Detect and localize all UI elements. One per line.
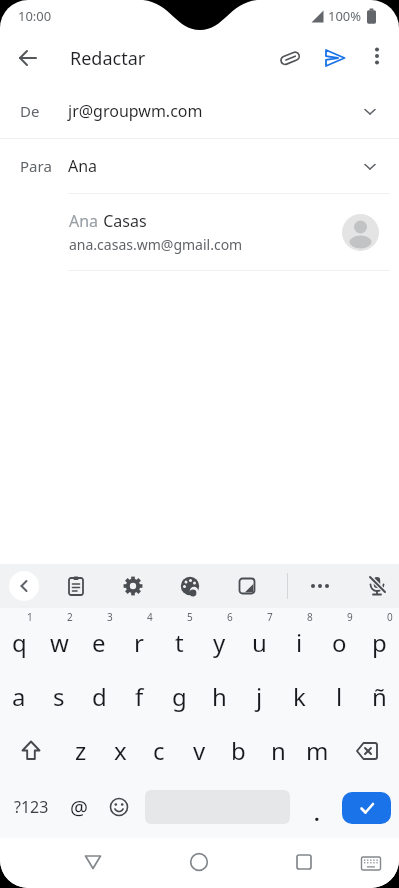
staticText: 1 [27, 610, 33, 624]
staticText: 5 [187, 610, 193, 624]
staticText: w [50, 626, 69, 659]
staticText: ?123 [14, 796, 49, 818]
staticText: 6 [227, 610, 233, 624]
button[interactable] [351, 843, 391, 883]
staticText: Redactar [70, 46, 146, 71]
staticText: 0 [387, 610, 393, 624]
button[interactable] [179, 842, 219, 882]
staticText: 100% [328, 7, 362, 25]
staticText: ana.casas.wm@gmail.com [69, 235, 243, 254]
staticText: j [256, 680, 263, 713]
staticText: x [114, 734, 127, 767]
staticText: Ana [69, 210, 99, 232]
button[interactable] [113, 566, 153, 606]
button[interactable] [300, 566, 340, 606]
staticText: ñ [372, 680, 387, 713]
staticText: v [193, 734, 206, 767]
staticText: f [135, 680, 144, 713]
staticText: l [336, 680, 343, 713]
button[interactable] [342, 792, 391, 824]
staticText: 4 [147, 610, 153, 624]
button[interactable] [8, 38, 48, 78]
staticText: a [12, 680, 26, 713]
staticText: . [314, 800, 320, 827]
staticText: 3 [107, 610, 113, 624]
button[interactable] [270, 38, 310, 78]
staticText: @ [70, 794, 88, 821]
button[interactable] [284, 842, 324, 882]
staticText: 10:00 [18, 7, 52, 25]
staticText: Para [20, 156, 52, 176]
staticText: s [53, 680, 65, 713]
staticText: h [212, 680, 227, 713]
staticText: t [175, 626, 184, 659]
button[interactable] [227, 566, 267, 606]
button[interactable]: De [0, 84, 399, 138]
staticText: k [293, 680, 306, 713]
button[interactable]: Ana [0, 194, 399, 270]
staticText: c [153, 734, 165, 767]
staticText: r [134, 626, 144, 659]
staticText: i [296, 626, 303, 659]
staticText: b [231, 734, 246, 767]
staticText: p [372, 626, 387, 659]
button[interactable] [357, 566, 397, 606]
button[interactable] [359, 38, 395, 74]
staticText: e [92, 626, 106, 659]
staticText: 7 [267, 610, 273, 624]
button[interactable] [170, 566, 210, 606]
staticText: 8 [307, 610, 313, 624]
staticText: jr@groupwm.com [68, 100, 203, 122]
staticText: q [12, 626, 27, 659]
staticText: De [20, 101, 40, 121]
staticText: 2 [67, 610, 73, 624]
staticText: Ana [68, 155, 98, 177]
staticText: Casas [99, 210, 147, 232]
staticText: y [213, 626, 226, 659]
button[interactable]: Para [0, 139, 399, 193]
staticText: z [75, 734, 87, 767]
staticText: u [252, 626, 267, 659]
button[interactable] [73, 842, 113, 882]
staticText: m [306, 734, 329, 767]
staticText: g [172, 680, 187, 713]
button[interactable] [315, 38, 355, 78]
staticText: 9 [347, 610, 353, 624]
button[interactable] [56, 566, 96, 606]
staticText: n [271, 734, 286, 767]
staticText: o [332, 626, 347, 659]
staticText: d [92, 680, 107, 713]
button[interactable] [9, 571, 39, 601]
